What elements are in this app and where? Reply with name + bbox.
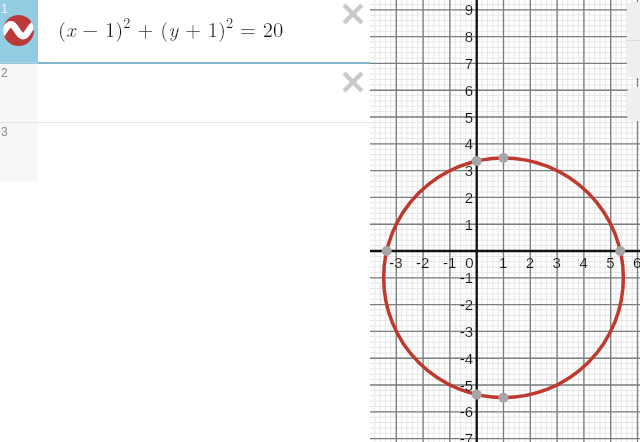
button[interactable]: 3 [0,123,370,181]
staticText: (x − 1)2 + (y + 1)2 = 20 [58,12,284,43]
button[interactable]: Zoom out [627,40,640,78]
staticText: 2 [1,66,8,79]
staticText: 3 [1,125,8,138]
button[interactable]: Delete expression 1 [342,3,364,25]
button[interactable]: 2 [0,64,370,123]
button[interactable]: Reset zoom [627,87,640,121]
button[interactable]: Delete expression 2 [342,71,364,93]
button[interactable]: 1 [0,0,370,64]
staticText: 1 [1,2,8,15]
